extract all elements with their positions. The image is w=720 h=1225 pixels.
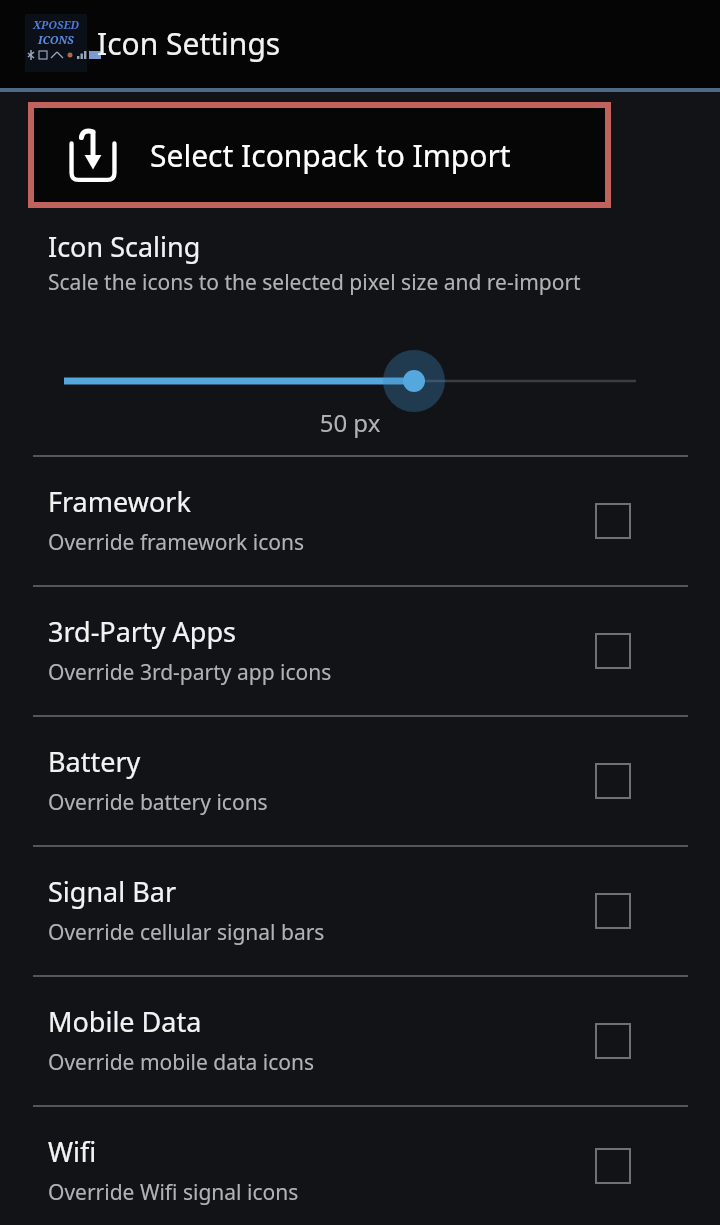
staticText: Signal Bar [48, 873, 177, 910]
button[interactable]: 3rd-Party Apps checkbox [596, 634, 630, 668]
staticText: 3rd-Party Apps [48, 613, 236, 650]
button[interactable]: Battery [0, 717, 720, 845]
staticText: Wifi [48, 1133, 97, 1170]
button[interactable]: Framework [0, 457, 720, 585]
button[interactable]: 3rd-Party Apps [0, 587, 720, 715]
button[interactable]: Mobile Data [0, 977, 720, 1105]
button[interactable]: Mobile Data checkbox [596, 1024, 630, 1058]
button[interactable]: Framework checkbox [596, 504, 630, 538]
button[interactable]: Wifi checkbox [596, 1149, 630, 1183]
staticText: Icon Settings [97, 23, 281, 64]
staticText: Override mobile data icons [48, 1048, 315, 1077]
button[interactable]: Import iconpack [28, 102, 611, 208]
staticText: 50 px [0, 406, 700, 439]
staticText: Mobile Data [48, 1003, 202, 1040]
staticText: Icon Scaling [48, 228, 201, 265]
staticText: Framework [48, 483, 191, 520]
staticText: Override battery icons [48, 788, 268, 817]
button[interactable]: Signal Bar checkbox [596, 894, 630, 928]
staticText: Override Wifi signal icons [48, 1178, 299, 1207]
staticText: XPOSED [33, 17, 79, 32]
button[interactable]: Wifi [0, 1107, 720, 1225]
staticText: Override cellular signal bars [48, 918, 325, 947]
staticText: Override 3rd-party app icons [48, 658, 332, 687]
staticText: ICONS [38, 32, 74, 47]
button[interactable]: Battery checkbox [596, 764, 630, 798]
staticText: Select Iconpack to Import [150, 135, 511, 176]
staticText: Scale the icons to the selected pixel si… [48, 268, 628, 297]
button[interactable]: Icon Scaling [0, 210, 720, 455]
button[interactable]: Signal Bar [0, 847, 720, 975]
staticText: Override framework icons [48, 528, 305, 557]
other: Import iconpack [64, 126, 122, 184]
staticText: Battery [48, 743, 141, 780]
